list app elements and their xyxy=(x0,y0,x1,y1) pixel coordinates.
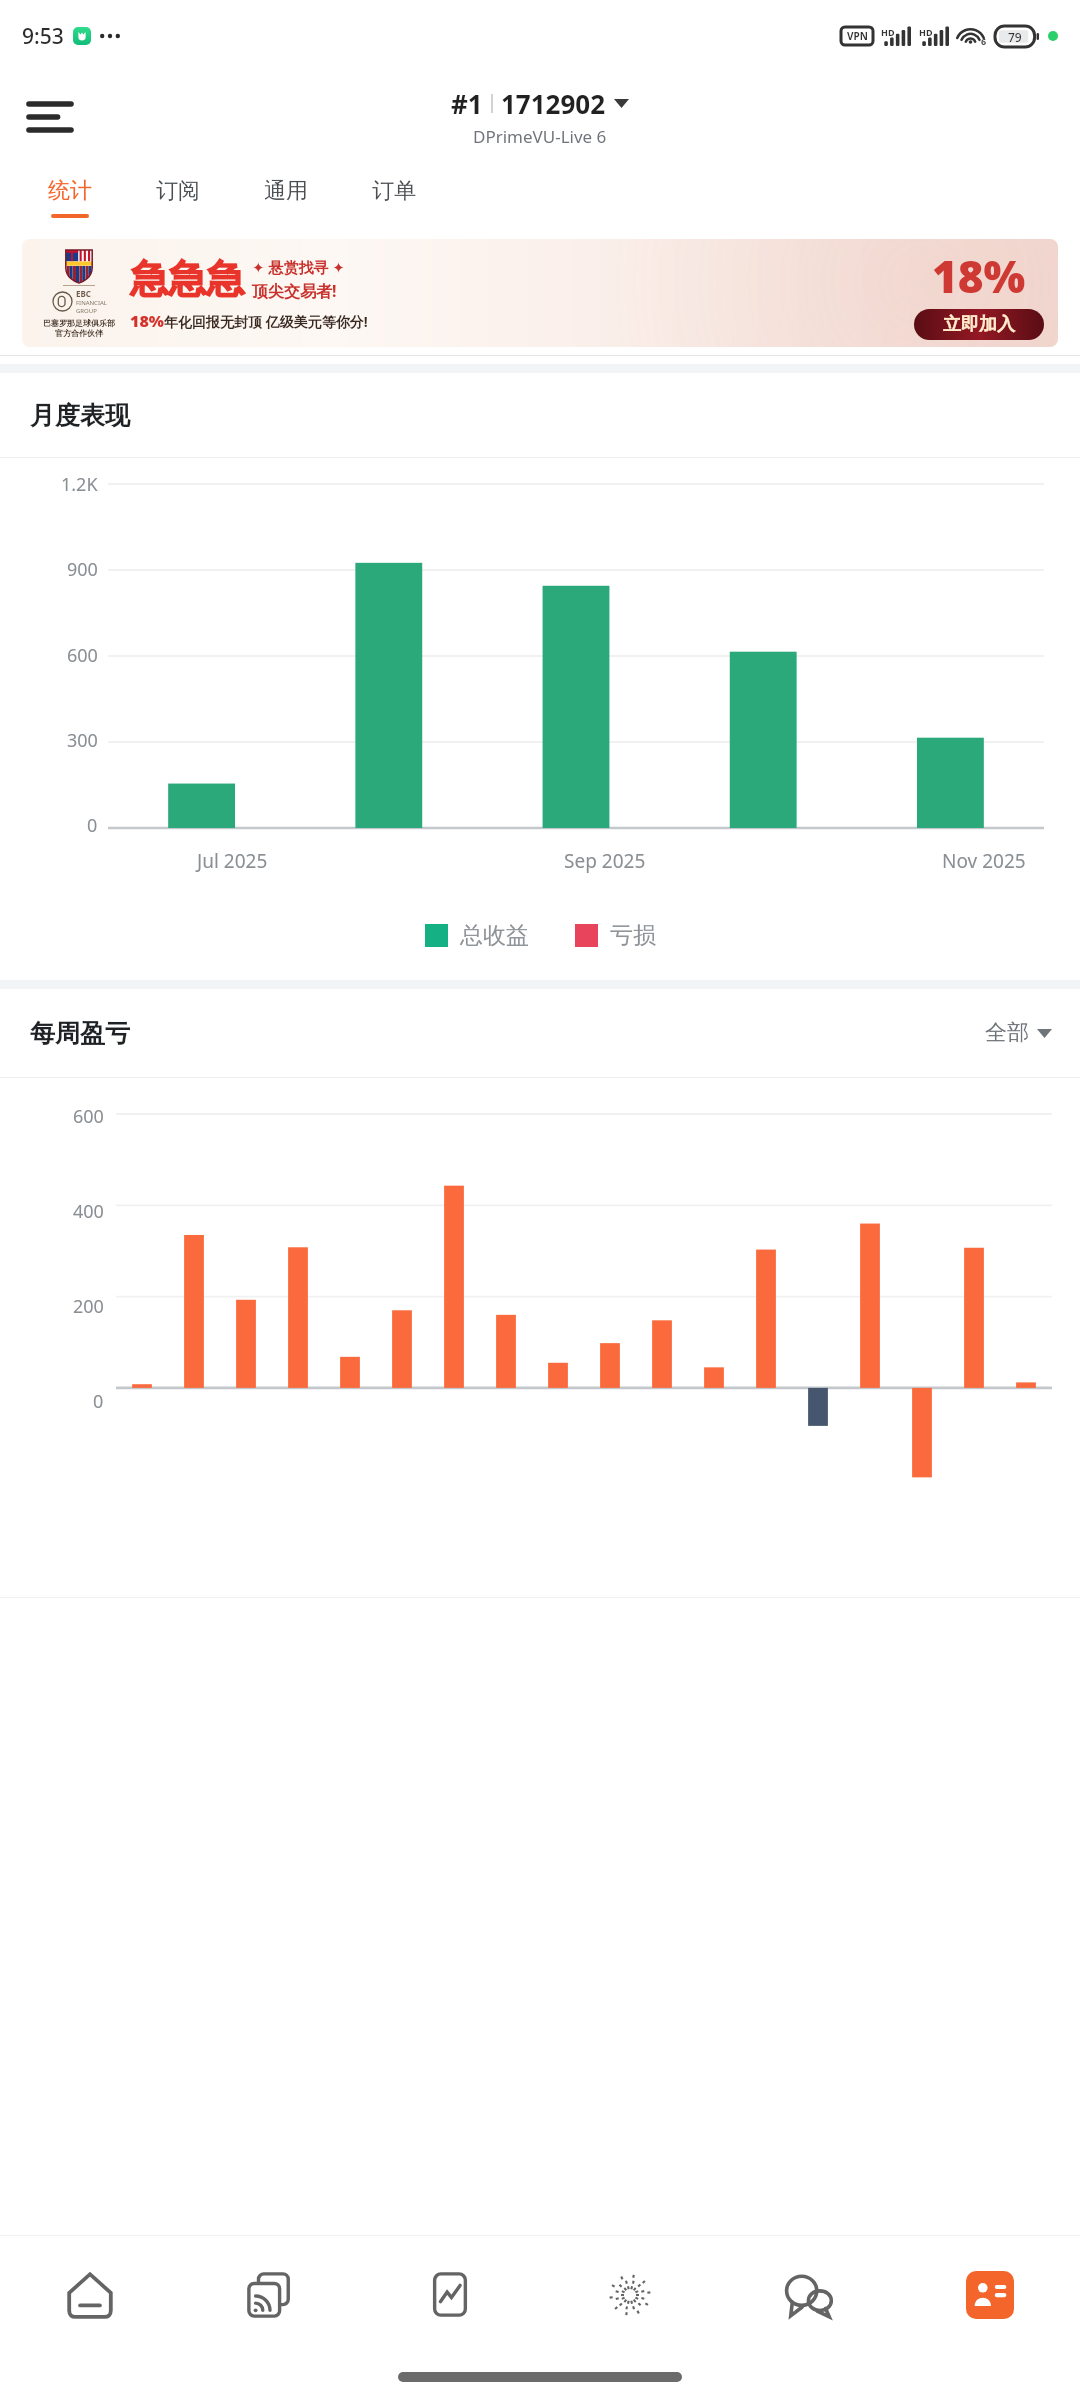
staticText: VPN xyxy=(847,29,868,43)
staticText: 月度表现 xyxy=(30,400,130,431)
staticText: 200 xyxy=(73,1294,104,1319)
staticText: GROUP xyxy=(76,307,97,315)
staticText: 400 xyxy=(73,1199,104,1224)
staticText: 18% xyxy=(130,310,164,332)
staticText: 年化回报无封顶 亿级美元等你分! xyxy=(164,312,368,331)
button[interactable]: #1 xyxy=(451,86,629,148)
staticText: 巴塞罗那足球俱乐部 xyxy=(43,318,115,328)
staticText: 600 xyxy=(73,1104,104,1129)
staticText: HD xyxy=(919,26,933,38)
staticText: 统计 xyxy=(48,177,92,205)
staticText: 300 xyxy=(67,728,98,753)
staticText: Nov 2025 xyxy=(942,848,1026,874)
button[interactable]: 亏损 xyxy=(575,921,656,950)
staticText: 1.2K xyxy=(61,472,98,497)
staticText: 0 xyxy=(87,813,98,838)
button[interactable]: 统计 xyxy=(16,162,124,232)
staticText: 立即加入 xyxy=(943,313,1015,336)
staticText: 亏损 xyxy=(610,921,656,950)
button[interactable]: 订单 xyxy=(340,162,448,232)
staticText: 官方合作伙伴 xyxy=(55,328,103,338)
button[interactable]: 全部 xyxy=(985,1019,1052,1047)
staticText: 900 xyxy=(67,557,98,582)
staticText: Sep 2025 xyxy=(564,848,646,874)
staticText: 1712902 xyxy=(501,86,606,121)
button[interactable]: Profile xyxy=(900,2236,1080,2354)
staticText: 18% xyxy=(932,246,1026,306)
staticText: 6 xyxy=(981,35,987,47)
staticText: 顶尖交易者! xyxy=(252,280,337,302)
button[interactable]: Menu xyxy=(18,85,82,149)
other: Profile xyxy=(966,2271,1014,2319)
staticText: 每周盈亏 xyxy=(30,1018,130,1049)
button[interactable]: 立即加入 xyxy=(914,309,1044,340)
staticText: 订阅 xyxy=(156,177,200,205)
button[interactable]: Home xyxy=(0,2236,180,2354)
staticText: 600 xyxy=(67,643,98,668)
staticText: FINANCIAL xyxy=(76,299,107,307)
staticText: EBC xyxy=(76,288,91,299)
button[interactable]: 总收益 xyxy=(425,921,529,950)
staticText: 0 xyxy=(93,1389,104,1414)
button[interactable]: Messages xyxy=(720,2236,900,2354)
staticText: 急急急 xyxy=(130,255,244,303)
button[interactable]: Charts xyxy=(360,2236,540,2354)
staticText: 订单 xyxy=(372,177,416,205)
staticText: Jul 2025 xyxy=(197,848,268,874)
staticText: HD xyxy=(881,26,895,38)
staticText: #1 xyxy=(451,86,483,121)
staticText: 9:53 xyxy=(22,22,64,51)
staticText: 总收益 xyxy=(460,921,529,950)
staticText: 通用 xyxy=(264,177,308,205)
staticText: 全部 xyxy=(985,1019,1029,1047)
button[interactable]: Copy trading xyxy=(180,2236,360,2354)
button[interactable]: Discover xyxy=(540,2236,720,2354)
button[interactable]: 订阅 xyxy=(124,162,232,232)
staticText: DPrimeVU-Live 6 xyxy=(473,125,607,148)
button[interactable]: 通用 xyxy=(232,162,340,232)
staticText: ✦ 悬赏找寻 ✦ xyxy=(252,257,345,277)
staticText: 79 xyxy=(1008,29,1022,45)
button[interactable]: EBC xyxy=(22,239,1058,347)
